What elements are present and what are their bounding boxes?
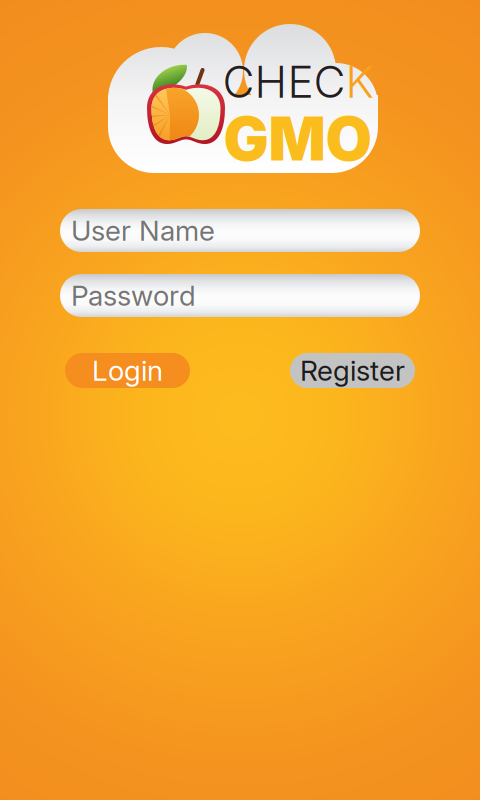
button[interactable]: Password	[60, 274, 420, 317]
staticText: Register	[300, 354, 405, 387]
button[interactable]: Register	[290, 353, 415, 388]
staticText: GMO	[223, 102, 372, 175]
staticText: Login	[92, 354, 163, 387]
staticText: CHEC	[222, 55, 345, 108]
button[interactable]: User Name	[60, 209, 420, 252]
staticText: Password	[71, 279, 196, 312]
staticText: User Name	[71, 214, 215, 247]
button[interactable]: Login	[65, 353, 190, 388]
staticText: K	[345, 55, 373, 108]
